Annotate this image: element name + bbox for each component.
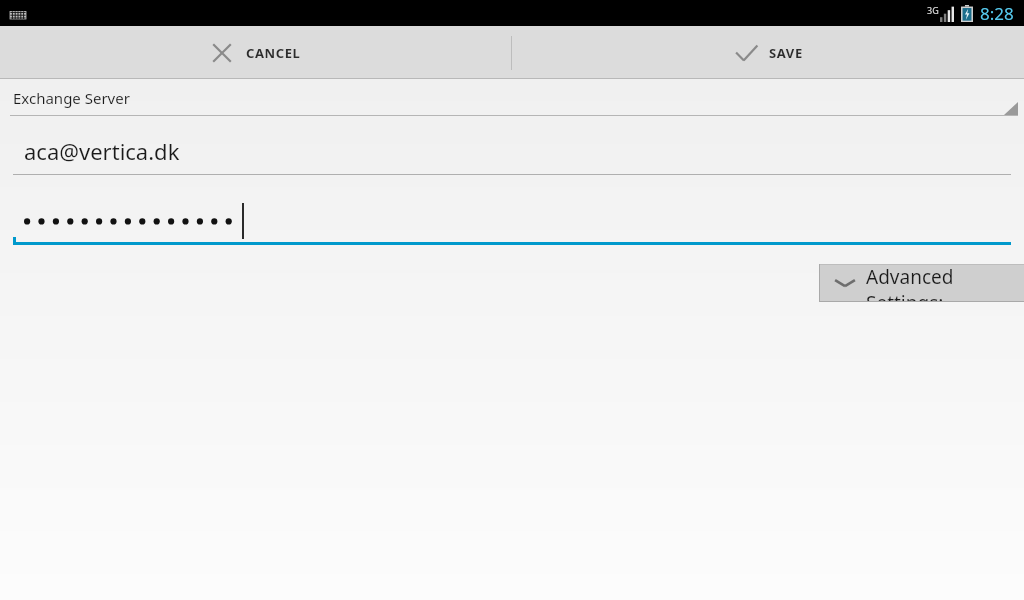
button[interactable]: SAVE	[512, 26, 1024, 79]
button[interactable]	[0, 197, 1024, 245]
staticText: 3G	[927, 4, 939, 16]
other: Open account type dropdown	[1004, 102, 1018, 115]
staticText: CANCEL	[246, 44, 301, 62]
staticText: SAVE	[769, 44, 803, 62]
button[interactable]: CANCEL	[0, 26, 512, 79]
staticText: 8:28	[980, 2, 1014, 25]
button[interactable]: Exchange Server	[0, 79, 1024, 116]
staticText: Exchange Server	[13, 88, 130, 108]
staticText: aca@vertica.dk	[24, 136, 180, 166]
staticText: Advanced Settings:	[866, 264, 1024, 302]
button[interactable]: aca@vertica.dk	[0, 127, 1024, 175]
button[interactable]: Advanced Settings:	[819, 264, 1024, 302]
